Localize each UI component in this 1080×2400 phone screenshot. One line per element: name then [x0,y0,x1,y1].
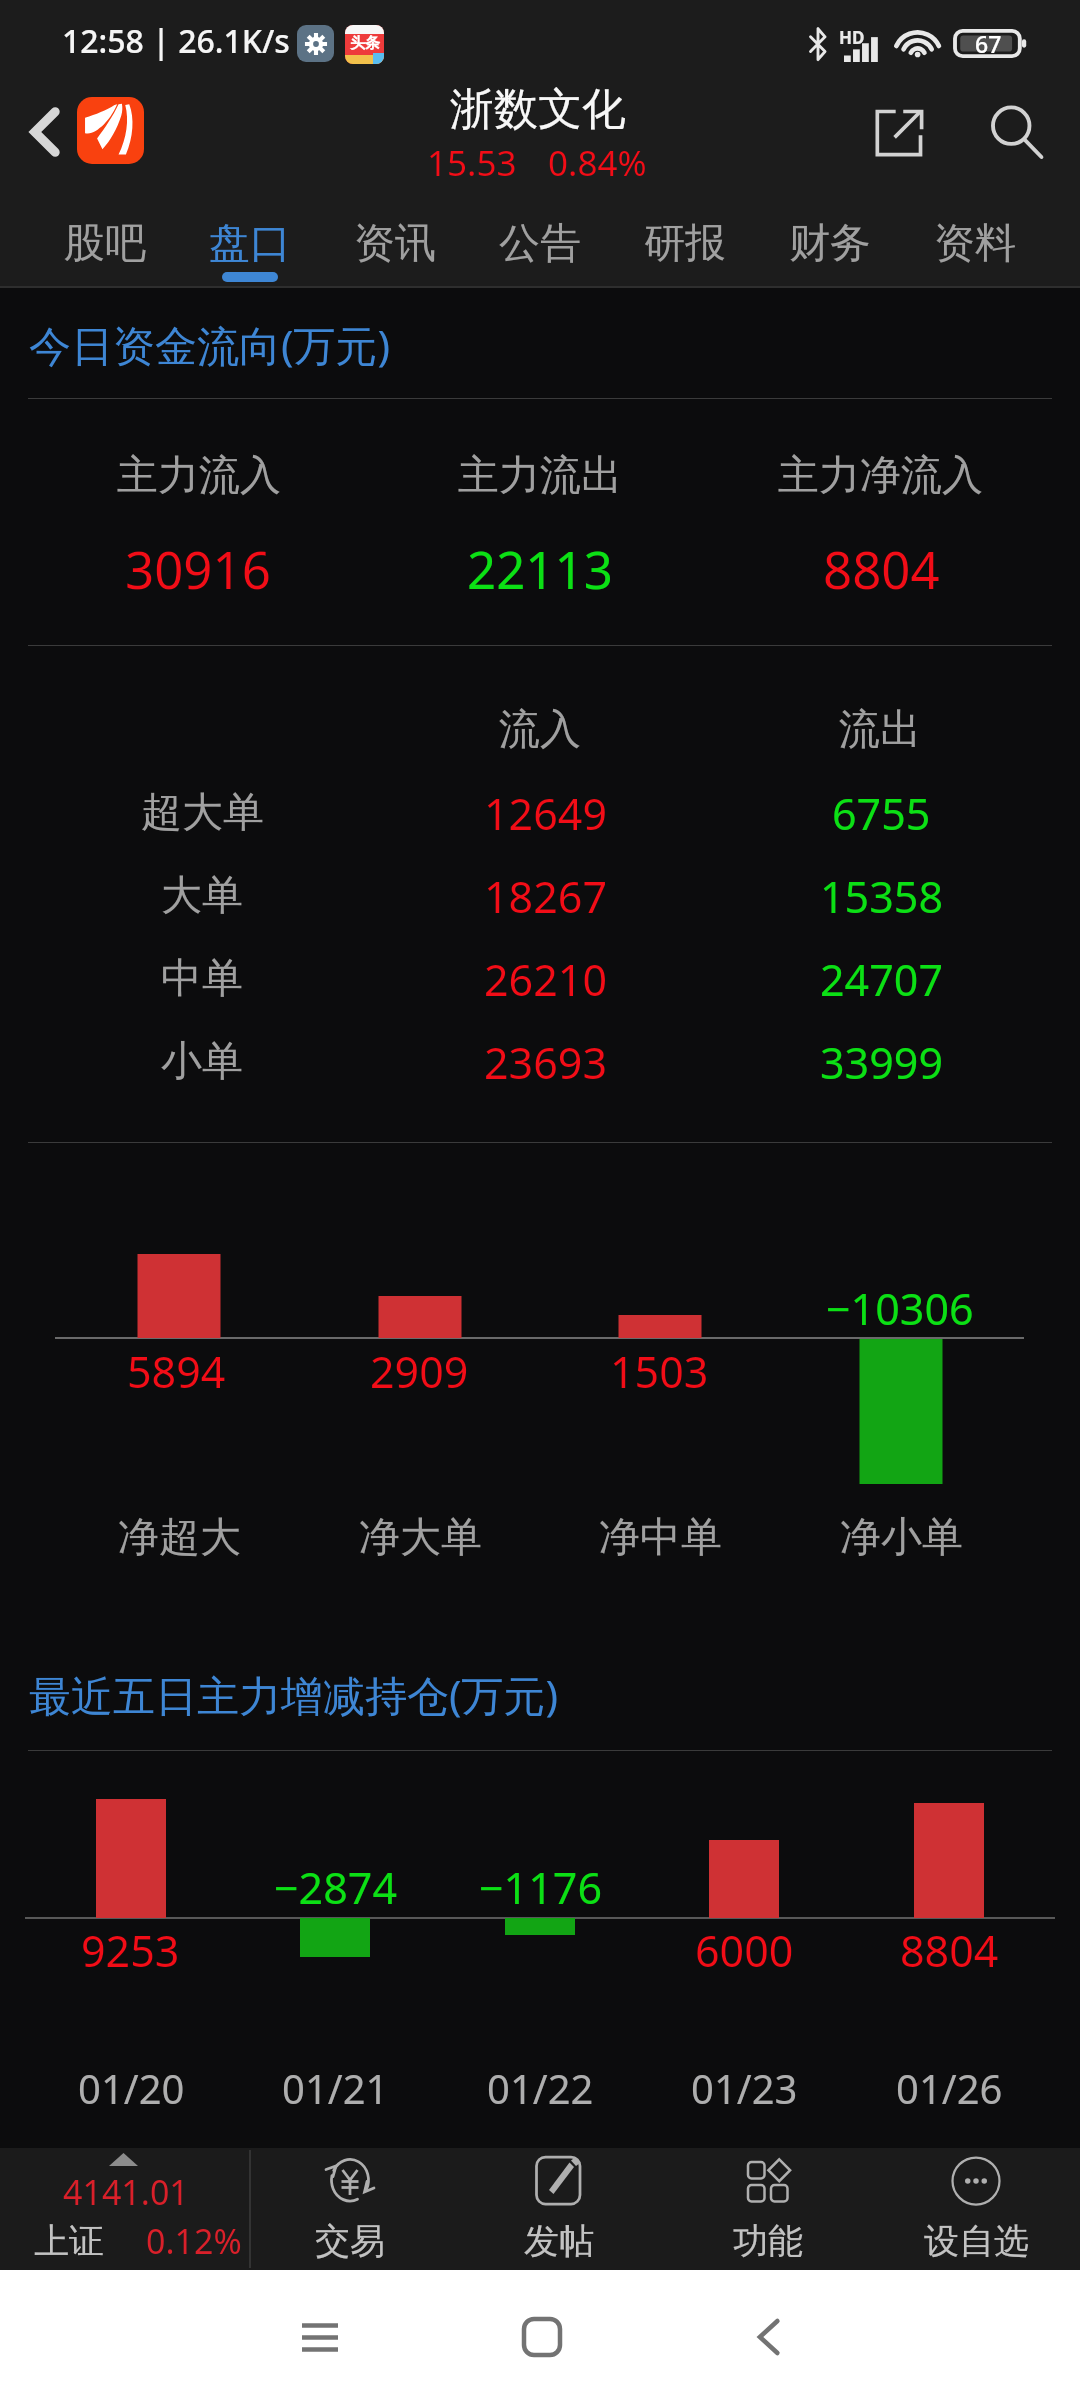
staticText: 6755 [832,784,931,843]
button[interactable]: Recents [280,2297,360,2377]
button[interactable]: 股吧 [33,190,177,288]
staticText: 公告 [499,218,581,270]
button[interactable]: 设自选 [872,2148,1080,2270]
staticText: −10306 [826,1279,974,1338]
staticText: 交易 [315,2219,385,2263]
staticText: 2909 [370,1342,469,1401]
button[interactable]: 资讯 [322,190,467,288]
staticText: 1503 [610,1342,709,1401]
staticText: 01/21 [282,2061,389,2115]
button[interactable]: 发帖 [455,2148,663,2270]
button[interactable]: Navigate back [729,2297,809,2377]
staticText: 净大单 [359,1512,482,1564]
button[interactable]: Search [963,82,1073,190]
staticText: 12:58 | 26.1K/s [62,19,290,63]
staticText: 15.53 [427,139,517,187]
button[interactable]: 盘口 [177,190,322,288]
staticText: 15358 [820,867,943,926]
staticText: 12649 [484,784,607,843]
staticText: 超大单 [141,787,264,839]
staticText: 8804 [900,1921,999,1980]
staticText: 主力流入 [117,450,281,502]
staticText: 主力流出 [458,450,622,502]
staticText: 4141.01 [63,2169,189,2215]
staticText: 流入 [499,704,581,756]
staticText: 资料 [934,218,1016,270]
button[interactable]: 研报 [612,190,757,288]
staticText: 22113 [467,534,613,603]
staticText: 01/23 [691,2061,798,2115]
staticText: 设自选 [924,2219,1029,2263]
staticText: 财务 [789,218,871,270]
staticText: HD [839,26,865,49]
staticText: 股吧 [64,218,146,270]
button[interactable]: Share [847,82,957,190]
staticText: 01/20 [78,2061,185,2115]
button[interactable]: 功能 [664,2148,872,2270]
staticText: 30916 [125,534,271,603]
button[interactable]: Home [502,2297,582,2377]
staticText: 8804 [823,534,940,603]
button[interactable]: 资料 [902,190,1047,288]
staticText: 0.12% [146,2218,242,2264]
staticText: 33999 [820,1033,943,1092]
button[interactable]: 财务 [757,190,902,288]
button[interactable]: Back [0,82,78,190]
staticText: 01/26 [896,2061,1003,2115]
staticText: −2874 [274,1858,397,1917]
staticText: 小单 [161,1036,243,1088]
staticText: 中单 [161,953,243,1005]
button[interactable]: 公告 [467,190,612,288]
staticText: 23693 [484,1033,607,1092]
staticText: 0.84% [548,139,647,187]
staticText: 盘口 [209,218,291,270]
button[interactable]: App home [77,97,144,164]
staticText: 67 [975,28,1002,59]
staticText: 大单 [161,870,243,922]
staticText: 资讯 [354,218,436,270]
staticText: 功能 [733,2219,803,2263]
staticText: 净小单 [840,1512,963,1564]
staticText: 上证 [34,2219,104,2263]
staticText: 6000 [695,1921,794,1980]
staticText: 最近五日主力增减持仓(万元) [29,1666,559,1723]
staticText: 24707 [820,950,943,1009]
staticText: 26210 [484,950,607,1009]
staticText: 净超大 [118,1512,241,1564]
staticText: 净中单 [599,1512,722,1564]
staticText: 头条 [350,34,380,53]
staticText: 流出 [839,704,921,756]
staticText: 今日资金流向(万元) [29,316,391,373]
staticText: 01/22 [487,2061,594,2115]
button[interactable]: 交易 [246,2148,454,2270]
staticText: 9253 [81,1921,180,1980]
button[interactable]: 4141.01 [0,2148,249,2270]
staticText: 5894 [127,1342,226,1401]
staticText: 研报 [644,218,726,270]
staticText: −1176 [479,1858,602,1917]
staticText: 主力净流入 [778,450,983,502]
staticText: 18267 [484,867,607,926]
staticText: 发帖 [524,2219,594,2263]
staticText: 浙数文化 [450,82,626,137]
